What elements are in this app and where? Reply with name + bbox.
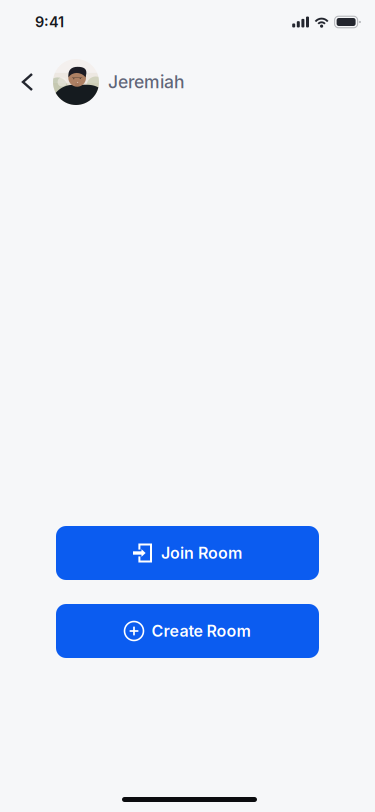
button[interactable]: Join Room [56,526,319,580]
button[interactable]: Back [0,59,53,105]
staticText: Join Room [161,543,242,563]
staticText: 9:41 [35,13,64,31]
button[interactable]: Create Room [56,604,319,658]
button[interactable]: Jeremiah [53,53,185,111]
staticText: Create Room [151,621,250,641]
staticText: Jeremiah [108,71,185,93]
